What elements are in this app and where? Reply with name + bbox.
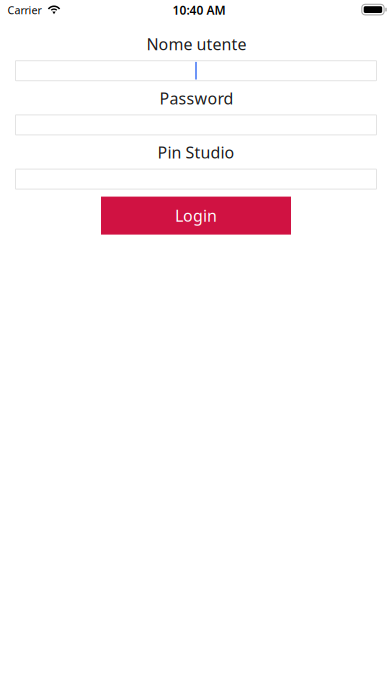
staticText: 10:40 AM (172, 2, 225, 18)
button[interactable]: Nome utente (15, 61, 376, 81)
staticText: Carrier (7, 3, 41, 17)
staticText: Login (175, 205, 217, 226)
staticText: Password (159, 88, 233, 109)
button[interactable]: Password (15, 115, 376, 135)
staticText: Nome utente (146, 33, 246, 55)
button[interactable]: Login (101, 197, 291, 235)
button[interactable]: Pin Studio (15, 169, 376, 189)
staticText: Pin Studio (157, 142, 234, 163)
